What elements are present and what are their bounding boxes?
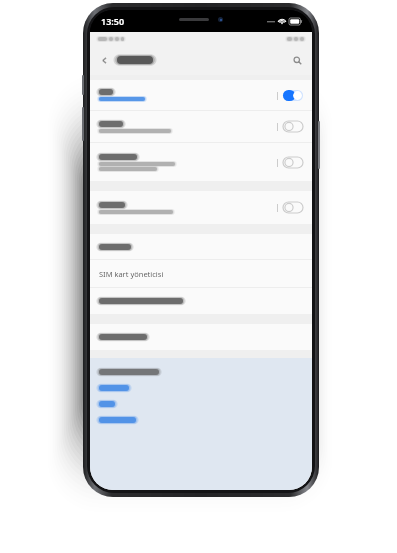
button[interactable]: SIM kart yöneticisi [90, 260, 312, 287]
button[interactable] [90, 288, 312, 314]
staticText: SIM kart yöneticisi [99, 269, 164, 279]
other: Flight mode toggle [276, 202, 303, 213]
button[interactable] [90, 324, 312, 350]
other: Wi-Fi toggle [276, 90, 303, 101]
button[interactable]: Bluetooth toggle [90, 111, 312, 142]
button[interactable] [99, 417, 136, 423]
button[interactable]: Flight mode toggle [90, 191, 312, 224]
button[interactable]: Search [290, 53, 304, 67]
staticText: 13:50 [101, 15, 125, 27]
button[interactable]: NFC toggle [90, 143, 312, 181]
button[interactable] [90, 234, 312, 259]
other: NFC toggle [276, 157, 303, 168]
button[interactable] [99, 401, 115, 407]
button[interactable]: Back [98, 54, 110, 66]
button[interactable] [99, 385, 129, 391]
button[interactable]: Wi-Fi toggle [90, 80, 312, 110]
other: Bluetooth toggle [276, 121, 303, 132]
